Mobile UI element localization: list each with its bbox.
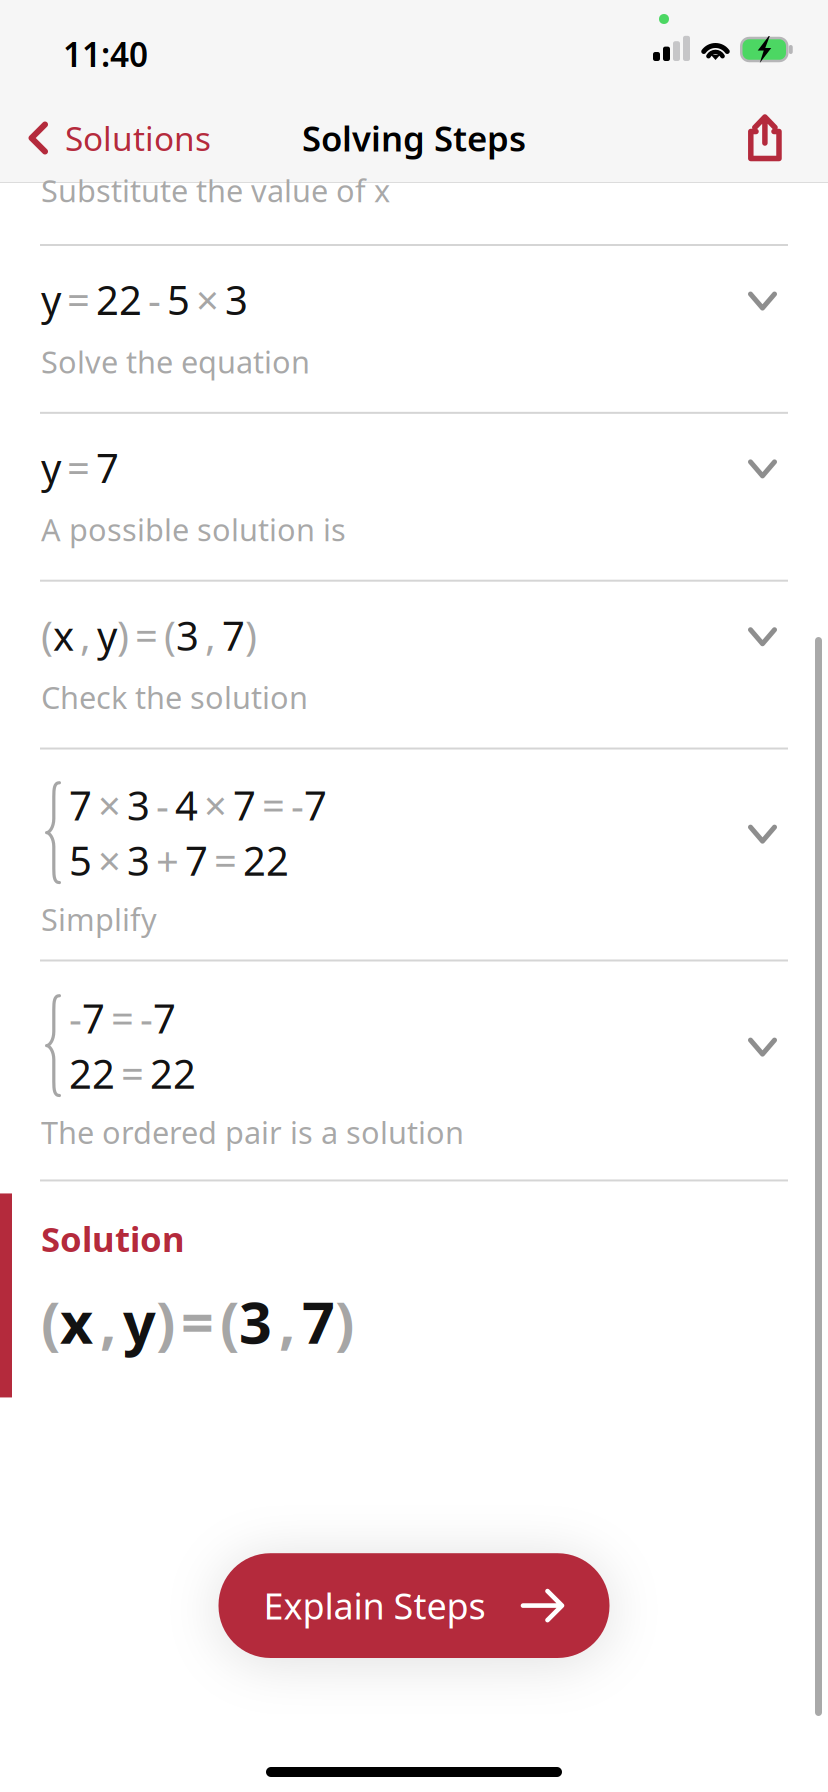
staticText: 4 (175, 778, 198, 832)
staticText: Solving Steps (302, 115, 526, 161)
staticText: 7 (82, 991, 105, 1045)
staticText: = (135, 609, 158, 662)
staticText: 7 (302, 1283, 335, 1360)
staticText: 22 (69, 1047, 115, 1100)
button[interactable]: y (0, 246, 828, 412)
button[interactable]: Explain Steps (218, 1553, 609, 1658)
staticText: , (100, 1283, 116, 1360)
staticText: Simplify (41, 899, 157, 939)
staticText: Solutions (65, 116, 211, 160)
staticText: × (98, 778, 121, 832)
button[interactable]: - (0, 961, 828, 1179)
button[interactable]: y (0, 414, 828, 580)
staticText: y (123, 1283, 156, 1360)
staticText: 7 (185, 834, 208, 887)
button[interactable]: Solutions (18, 102, 221, 174)
staticText: , (279, 1283, 295, 1360)
staticText: 7 (233, 778, 256, 832)
staticText: 3 (225, 273, 248, 326)
staticText: - (156, 778, 169, 832)
staticText: Substitute the value of x (41, 170, 390, 211)
staticText: Solve the equation (41, 341, 310, 382)
staticText: 7 (96, 441, 119, 494)
staticText: × (196, 273, 219, 326)
staticText: 7 (222, 609, 245, 662)
staticText: 22 (243, 834, 289, 887)
staticText: Solution (41, 1215, 185, 1261)
staticText: 5 (167, 273, 190, 326)
staticText: 3 (127, 834, 150, 887)
button[interactable]: Share (732, 102, 798, 174)
staticText: - (148, 273, 161, 326)
staticText: = (67, 441, 90, 494)
staticText: ( (41, 609, 53, 662)
staticText: x (53, 609, 74, 662)
staticText: Explain Steps (263, 1582, 485, 1629)
staticText: × (98, 834, 121, 887)
staticText: 7 (153, 991, 176, 1045)
staticText: 11:40 (63, 32, 148, 76)
staticText: = (111, 991, 134, 1045)
staticText: ) (156, 1283, 175, 1360)
staticText: 5 (69, 834, 92, 887)
staticText: 7 (69, 778, 92, 832)
staticText: y (41, 441, 61, 494)
staticText: × (204, 778, 227, 832)
staticText: 3 (239, 1283, 272, 1360)
staticText: 3 (127, 778, 150, 832)
staticText: y (41, 273, 61, 326)
staticText: x (60, 1283, 93, 1360)
staticText: = (214, 834, 237, 887)
button[interactable]: 7 (0, 749, 828, 959)
staticText: - (291, 778, 304, 832)
staticText: , (205, 609, 216, 662)
staticText: ( (41, 1283, 60, 1360)
staticText: = (67, 273, 90, 326)
staticText: - (69, 991, 82, 1045)
staticText: = (121, 1047, 144, 1100)
staticText: , (80, 609, 91, 662)
staticText: + (156, 834, 179, 887)
staticText: The ordered pair is a solution (41, 1112, 464, 1152)
staticText: ) (117, 609, 129, 662)
staticText: 7 (304, 778, 327, 832)
staticText: ) (335, 1283, 354, 1360)
staticText: 3 (176, 609, 199, 662)
staticText: = (262, 778, 285, 832)
staticText: ) (245, 609, 257, 662)
staticText: 22 (150, 1047, 196, 1100)
staticText: y (97, 609, 117, 662)
staticText: - (140, 991, 153, 1045)
staticText: = (181, 1283, 214, 1360)
staticText: Check the solution (41, 677, 308, 717)
staticText: A possible solution is (41, 509, 346, 550)
staticText: ( (164, 609, 176, 662)
button[interactable]: ( (0, 582, 828, 747)
staticText: 22 (96, 273, 142, 326)
staticText: ( (220, 1283, 239, 1360)
